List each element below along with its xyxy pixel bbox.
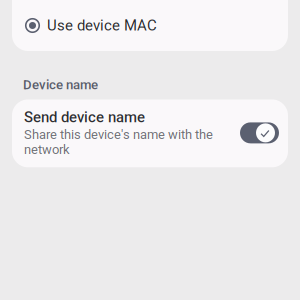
staticText: Send device name (24, 108, 145, 126)
staticText: Use device MAC (47, 17, 157, 34)
button[interactable]: Use device MAC (12, 0, 288, 51)
staticText: Share this device's name with the networ… (24, 127, 213, 157)
staticText: Device name (23, 77, 98, 92)
button[interactable]: Send device name (12, 99, 288, 167)
